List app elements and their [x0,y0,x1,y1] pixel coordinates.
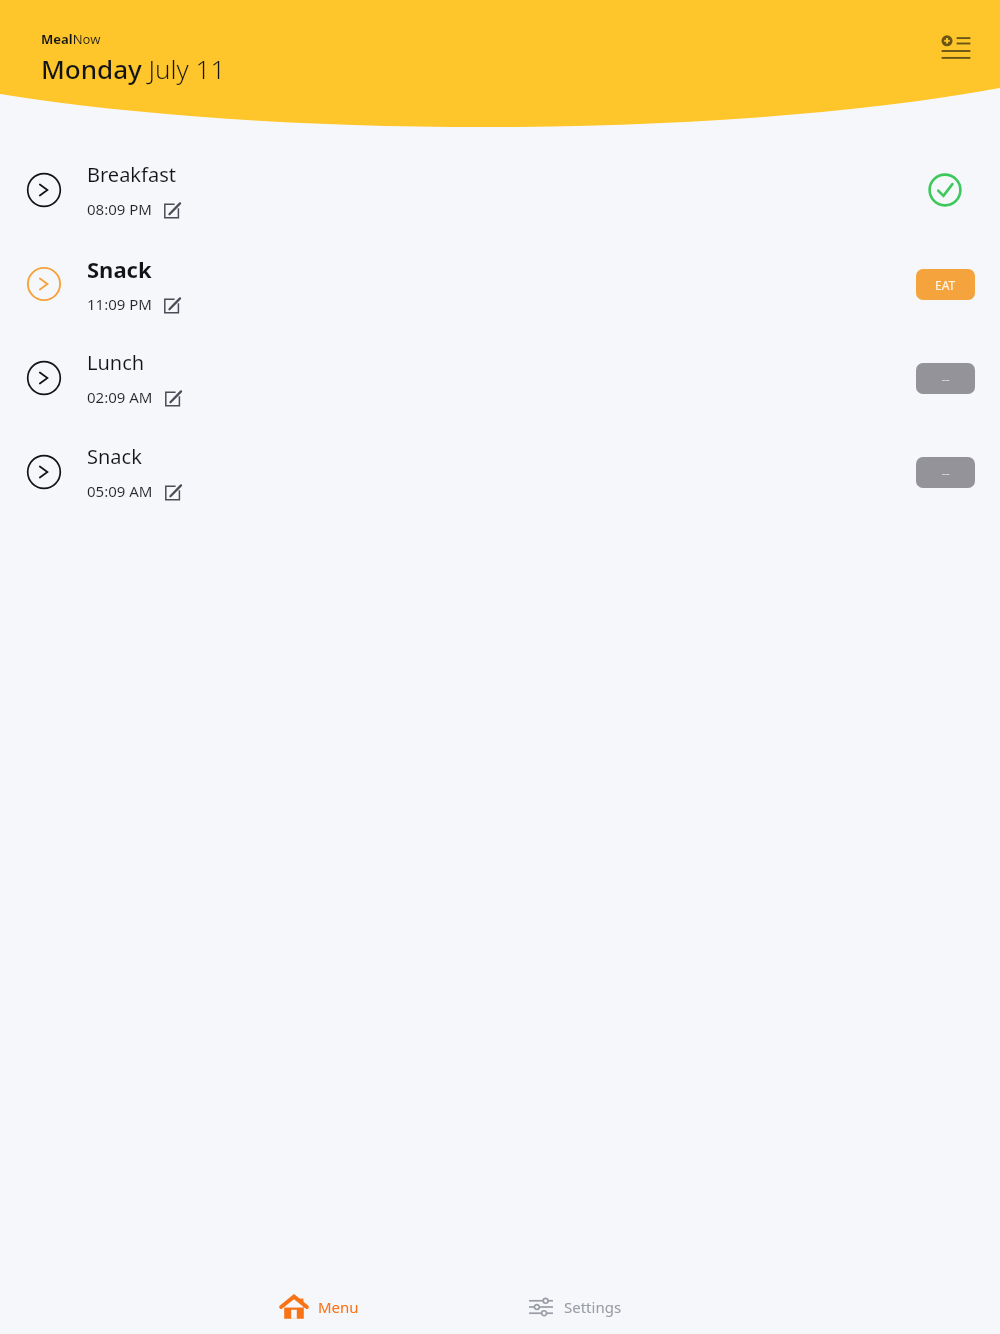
staticText: 02:09 AM [87,387,153,407]
staticText: 08:09 PM [87,199,152,219]
staticText: Monday July 11 [41,51,226,86]
staticText: Breakfast [87,161,176,188]
staticText: MealNow [41,30,101,48]
button[interactable]: EAT [916,269,975,300]
staticText: Snack [87,254,152,284]
staticText: Snack [87,443,142,470]
staticText: -- [942,371,950,387]
staticText: 11:09 PM [87,294,152,314]
button[interactable]: Edit time [163,198,185,220]
button[interactable]: Lunch [0,331,1000,425]
staticText: 05:09 AM [87,481,153,501]
button[interactable]: -- [916,457,975,488]
button[interactable]: -- [916,363,975,394]
button[interactable]: Snack [0,425,1000,519]
button[interactable]: Snack [0,237,1000,331]
button[interactable]: Edit time [164,480,186,502]
button[interactable]: Eaten [925,170,965,210]
staticText: Menu [318,1297,359,1317]
button[interactable]: Settings [500,1280,750,1334]
button[interactable]: Menu [250,1280,500,1334]
staticText: -- [942,465,950,481]
staticText: Settings [564,1297,622,1317]
button[interactable]: Edit time [163,293,185,315]
button[interactable]: Add meal [934,26,978,70]
button[interactable]: Breakfast [0,143,1000,237]
button[interactable]: Edit time [164,386,186,408]
staticText: EAT [935,277,956,293]
staticText: Lunch [87,349,145,376]
